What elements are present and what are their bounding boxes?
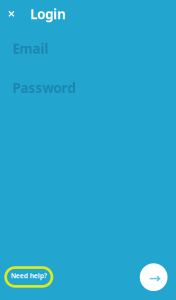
button[interactable]: Password [12, 73, 163, 103]
button[interactable]: Need help? [4, 266, 53, 288]
staticText: Email [12, 40, 48, 57]
staticText: Password [12, 79, 75, 97]
staticText: Need help? [11, 271, 47, 280]
button[interactable]: Email [12, 33, 163, 63]
button[interactable]: Continue [139, 263, 168, 291]
button[interactable]: Close [3, 6, 19, 22]
staticText: Login [30, 5, 66, 23]
